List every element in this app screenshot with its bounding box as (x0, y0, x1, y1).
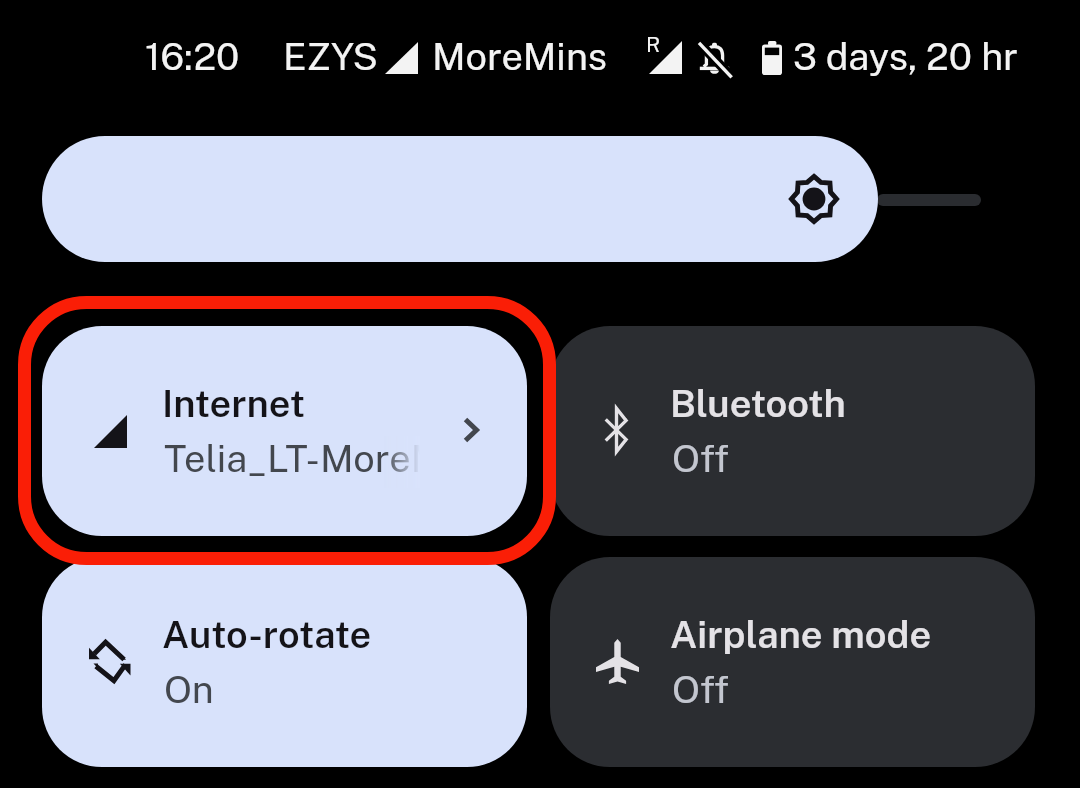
staticText: Telia_LT-MoreM (164, 436, 420, 481)
button[interactable]: Brightness (42, 136, 878, 262)
staticText: Off (672, 667, 730, 712)
button[interactable]: Airplane mode (550, 557, 1035, 767)
staticText: Auto-rotate (162, 612, 372, 657)
staticText: Off (672, 436, 730, 481)
staticText: 16:20 (145, 34, 240, 79)
button[interactable]: Internet (42, 326, 527, 536)
staticText: MoreMins (432, 34, 607, 79)
button[interactable]: Bluetooth (550, 326, 1035, 536)
staticText: Airplane mode (670, 612, 932, 657)
staticText: 3 days, 20 hr (793, 34, 1018, 79)
staticText: Bluetooth (670, 381, 846, 426)
staticText: R (646, 32, 661, 57)
staticText: On (164, 667, 214, 712)
staticText: Internet (162, 381, 306, 426)
button[interactable]: Auto-rotate (42, 557, 527, 767)
staticText: EZYS (283, 34, 379, 79)
